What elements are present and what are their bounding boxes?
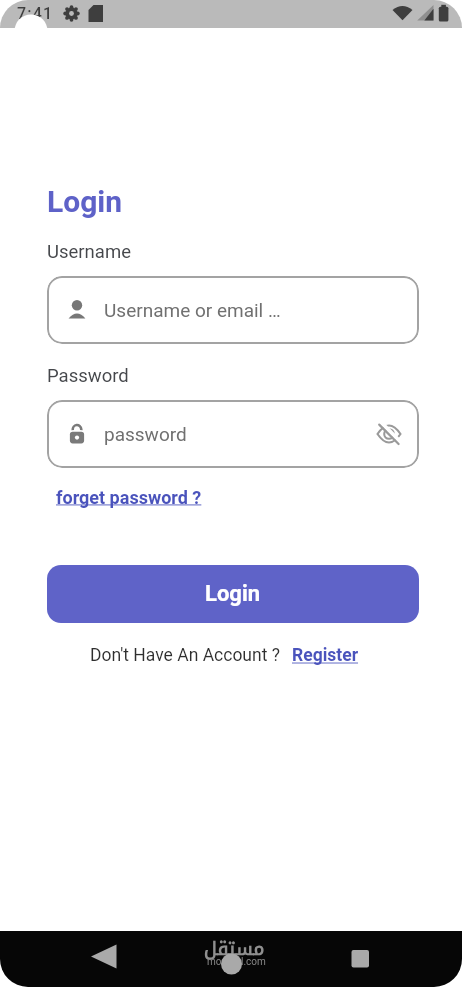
button[interactable]: Username or email … <box>47 276 419 344</box>
staticText: Don't Have An Account ? <box>90 645 281 666</box>
staticText: 7:41 <box>17 4 54 23</box>
staticText: مستقل <box>204 931 265 967</box>
button[interactable]: Register <box>292 645 359 666</box>
staticText: Username or email … <box>104 299 281 321</box>
staticText: Password <box>47 365 129 387</box>
staticText: password <box>104 423 187 445</box>
staticText: mostaql.com <box>207 956 266 968</box>
button[interactable]: password <box>47 400 419 468</box>
button[interactable]: forget password ? <box>56 487 202 508</box>
button[interactable]: Login <box>47 565 419 623</box>
staticText: Login <box>205 581 261 607</box>
staticText: Username <box>47 241 131 263</box>
staticText: Login <box>47 184 123 219</box>
